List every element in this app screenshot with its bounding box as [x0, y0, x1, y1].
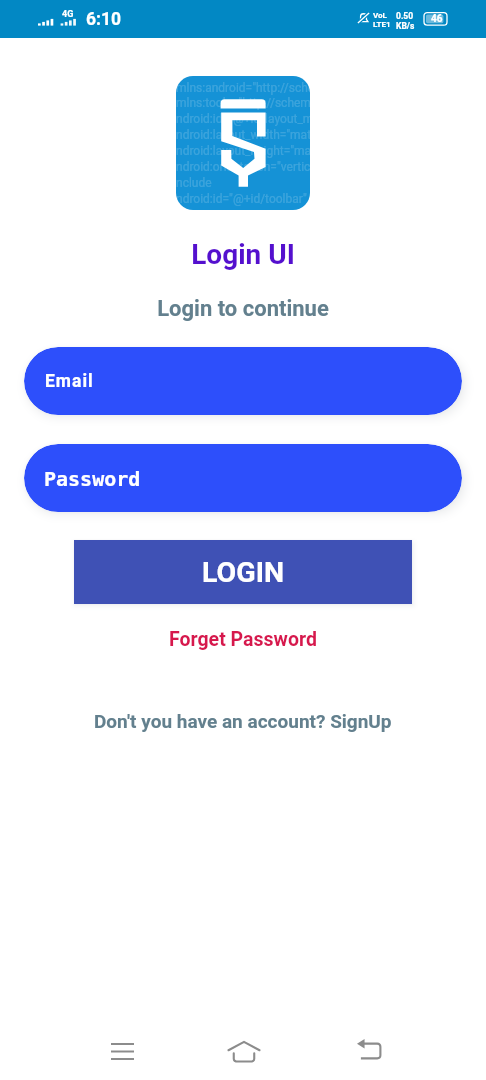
staticText: LOGIN [202, 556, 285, 589]
staticText: 0.50 [396, 11, 414, 21]
staticText: LTE1 [373, 20, 391, 29]
staticText: KB/s [396, 21, 415, 31]
staticText: Don't you have an account? SignUp [94, 710, 392, 732]
staticText: 4G [62, 9, 74, 20]
staticText: mlns:android="http://schemas mlns:tools=… [176, 81, 310, 206]
staticText: Password [44, 467, 141, 490]
button[interactable]: Back [345, 1031, 395, 1071]
staticText: 6:10 [86, 9, 122, 30]
button[interactable]: Home [219, 1031, 269, 1071]
button[interactable]: Recent apps [97, 1031, 147, 1071]
staticText: Login to continue [0, 296, 486, 322]
staticText: Forget Password [169, 628, 317, 651]
button[interactable]: Password [24, 444, 462, 512]
button[interactable]: Email [24, 347, 462, 415]
button[interactable]: LOGIN [74, 540, 412, 604]
staticText: 46 [431, 13, 443, 25]
button[interactable]: Don't you have an account? SignUp [90, 706, 396, 736]
staticText: Login UI [0, 238, 486, 271]
button[interactable]: Forget Password [165, 624, 321, 655]
staticText: Email [45, 371, 94, 392]
staticText: VoL [373, 11, 387, 20]
